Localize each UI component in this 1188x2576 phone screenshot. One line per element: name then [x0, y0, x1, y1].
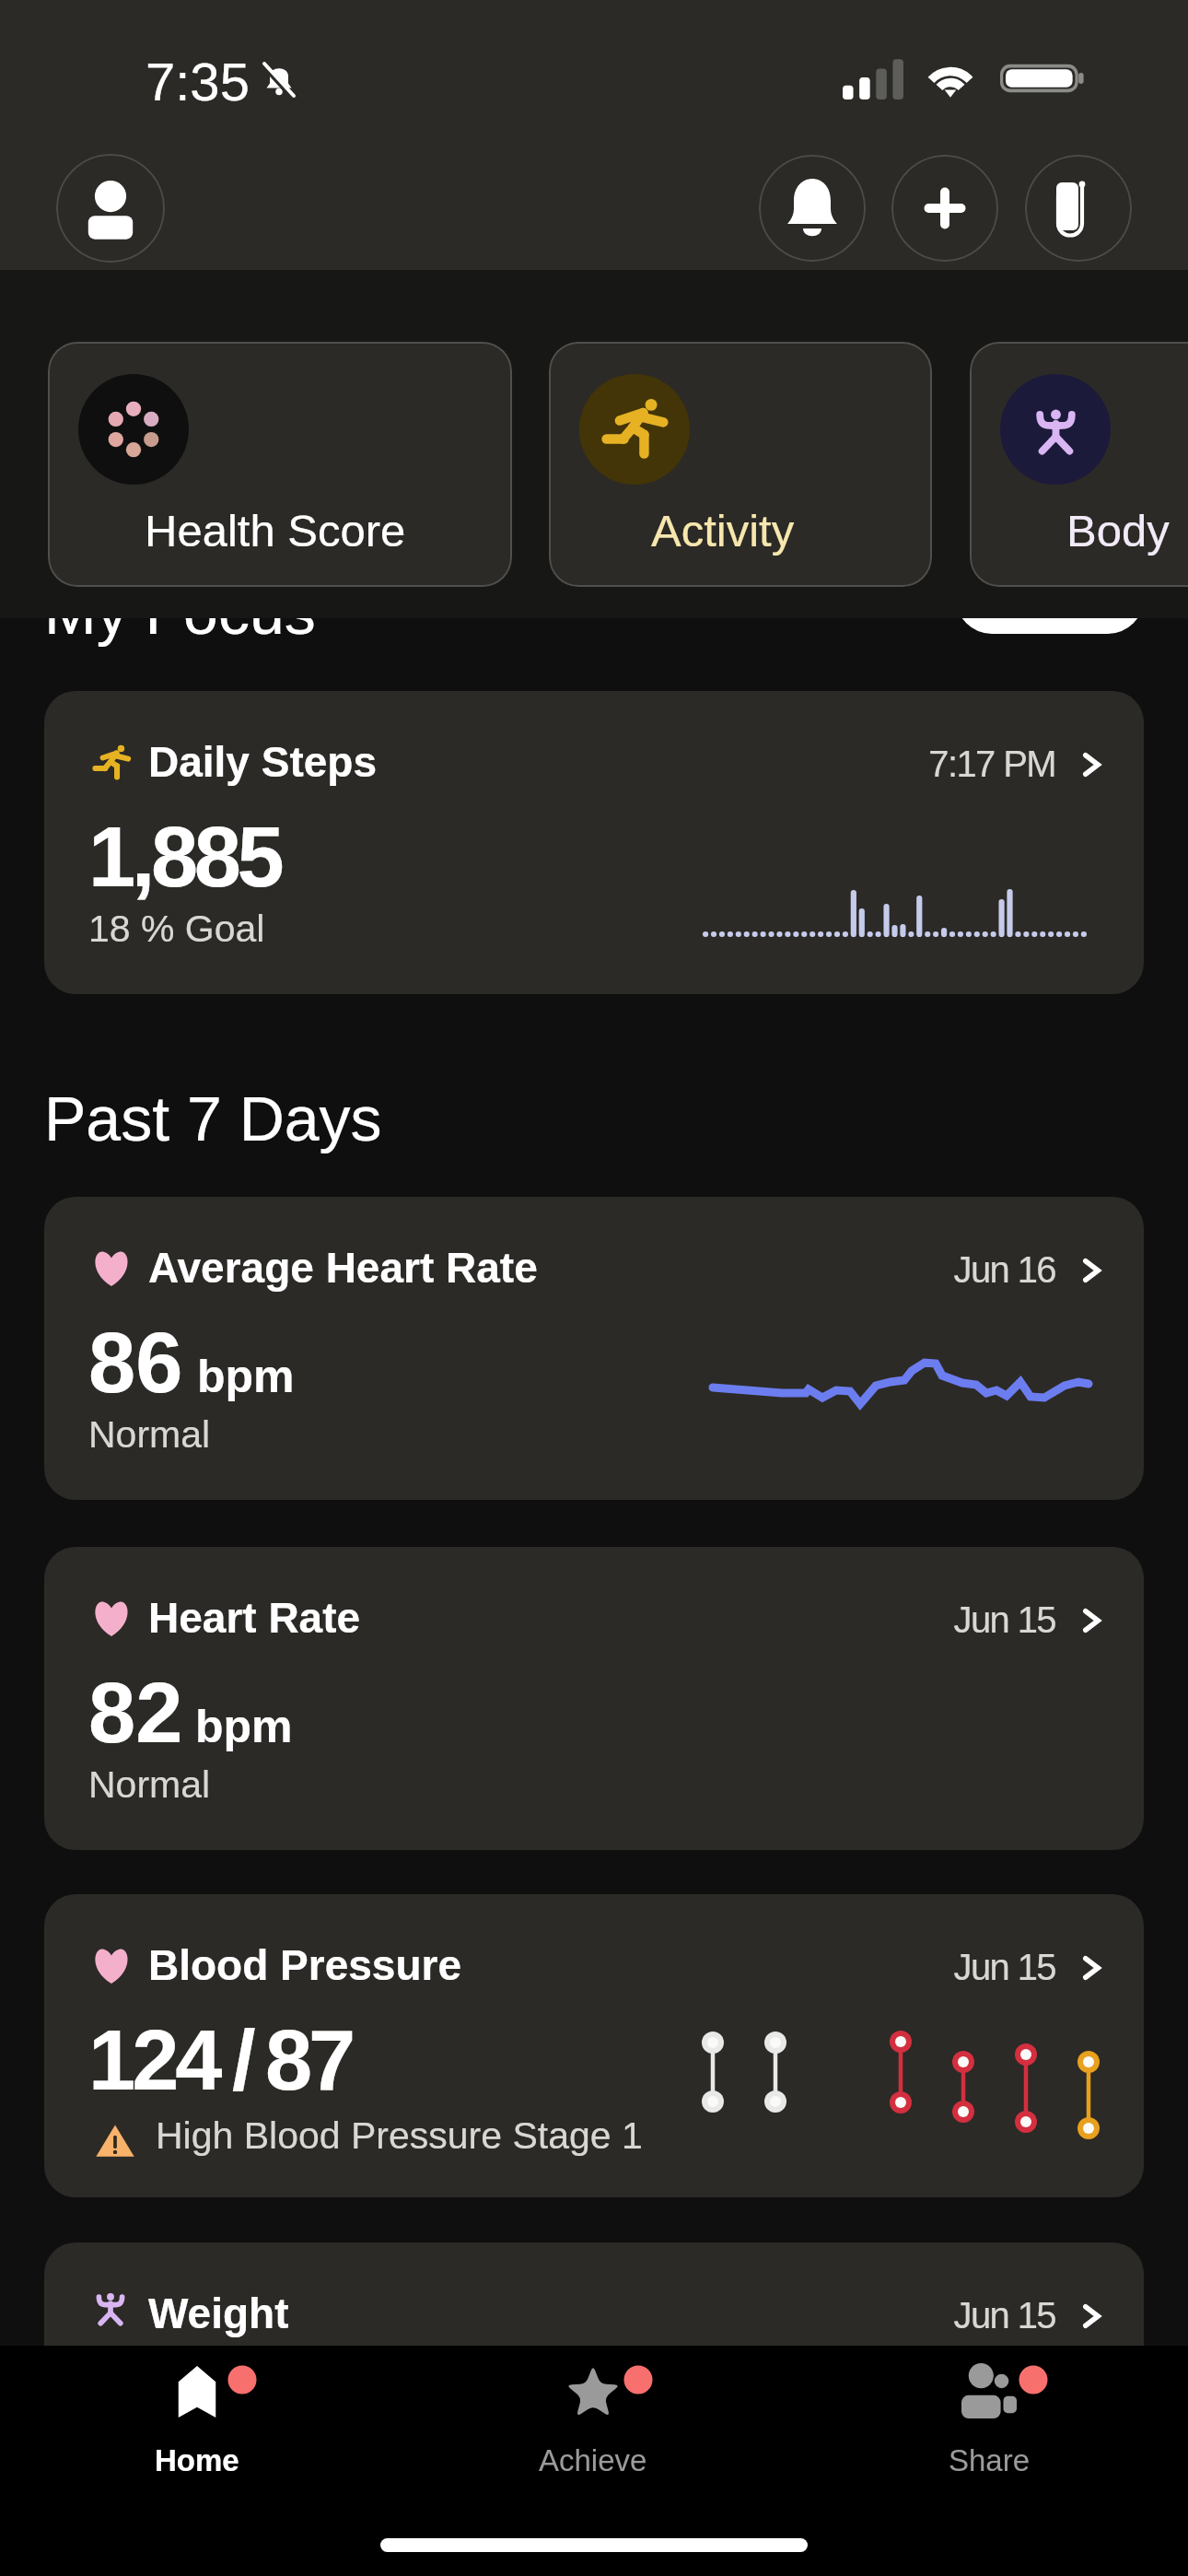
button[interactable]: Edit focus	[956, 562, 1144, 634]
staticText: bpm	[197, 1351, 295, 1402]
staticText: Jun 15	[687, 1947, 1055, 1988]
staticText: Daily Steps	[148, 738, 377, 785]
staticText: 1,885	[88, 810, 281, 905]
staticText: Achieve	[539, 2443, 647, 2477]
staticText: Body	[1066, 506, 1170, 556]
staticText: Average Heart Rate	[148, 1244, 538, 1291]
button[interactable]: Blood Pressure	[44, 1894, 1144, 2197]
button[interactable]: Daily Steps	[44, 691, 1144, 994]
staticText: Jun 15	[687, 2295, 1055, 2336]
button[interactable]: Average Heart Rate	[44, 1197, 1144, 1500]
staticText: Health Score	[145, 506, 406, 556]
staticText: bpm	[195, 1701, 293, 1752]
button[interactable]: Weight	[44, 2242, 1144, 2546]
staticText: Past 7 Days	[44, 1083, 382, 1153]
staticText: 124 / 87	[88, 2013, 353, 2108]
staticText: Normal	[88, 1413, 211, 1456]
staticText: Share	[949, 2443, 1031, 2477]
staticText: Activity	[651, 506, 795, 556]
staticText: Jun 16	[687, 1249, 1055, 1291]
button[interactable]: Home	[0, 2346, 395, 2576]
staticText: Heart Rate	[148, 1594, 361, 1641]
staticText: 86	[88, 1316, 183, 1411]
staticText: Jun 15	[687, 1599, 1055, 1641]
button[interactable]: Share	[791, 2346, 1187, 2576]
button[interactable]: Add	[891, 155, 998, 262]
button[interactable]: Scan	[1025, 155, 1132, 262]
button[interactable]: Activity	[549, 342, 932, 587]
staticText: My Focus	[44, 577, 316, 647]
staticText: Normal	[88, 1763, 211, 1806]
button[interactable]: Notifications	[759, 155, 866, 262]
staticText: Home	[155, 2443, 239, 2477]
button[interactable]: Body	[970, 342, 1188, 587]
staticText: Blood Pressure	[148, 1941, 461, 1988]
button[interactable]: Achieve	[395, 2346, 791, 2576]
staticText: Weight	[148, 2289, 289, 2336]
staticText: High Blood Pressure Stage 1	[156, 2114, 643, 2157]
staticText: 82	[88, 1666, 183, 1761]
staticText: 18 % Goal	[88, 907, 265, 950]
staticText: 7:17 PM	[687, 744, 1055, 785]
button[interactable]: Profile	[56, 154, 165, 263]
staticText: 7:35	[146, 52, 250, 111]
button[interactable]: Heart Rate	[44, 1547, 1144, 1850]
button[interactable]: Health Score	[48, 342, 512, 587]
